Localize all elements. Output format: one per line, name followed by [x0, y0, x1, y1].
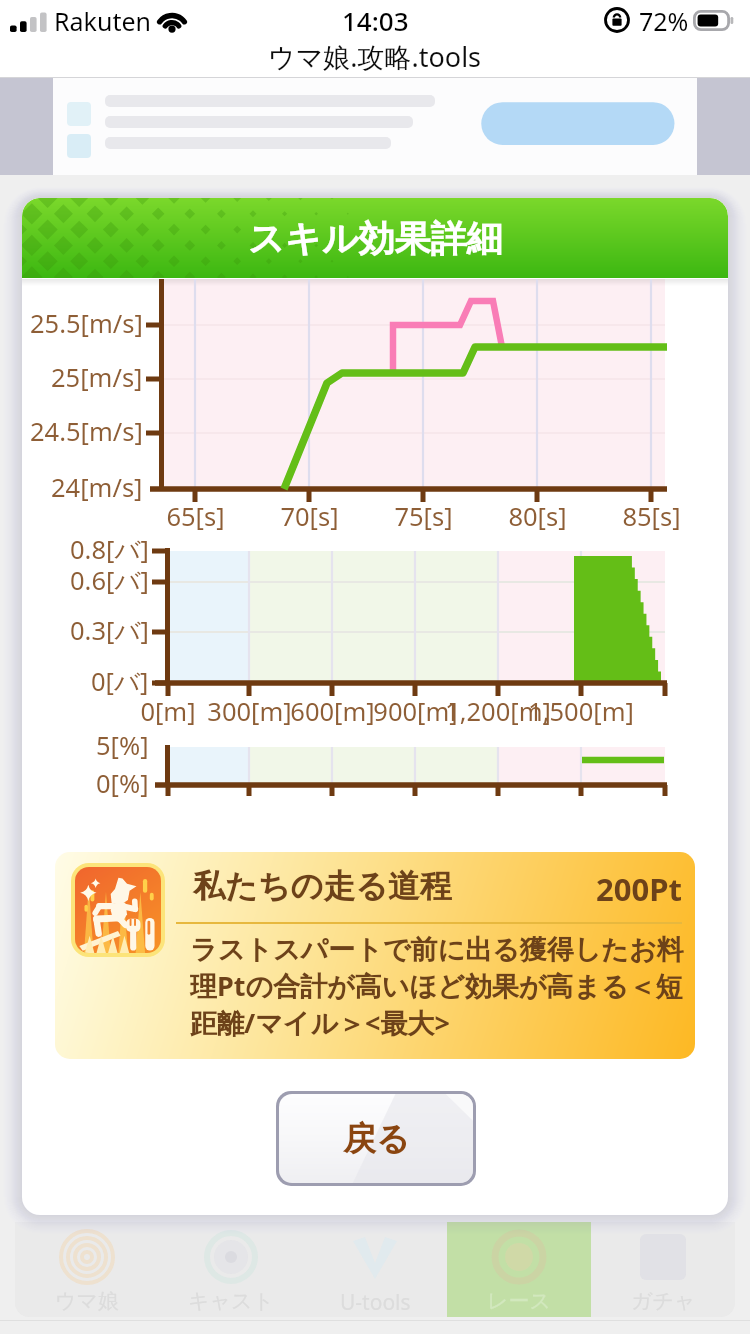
staticText: 0[バ] [91, 664, 149, 699]
button[interactable]: 戻る [279, 1094, 473, 1183]
staticText: 200Pt [596, 868, 682, 910]
staticText: 1,200[m] [445, 694, 551, 729]
button[interactable]: U-tools [303, 1222, 447, 1317]
staticText: 14:03 [342, 3, 409, 38]
staticText: キャスト [188, 1288, 274, 1314]
staticText: 70[s] [280, 499, 339, 534]
staticText: 0.3[バ] [70, 613, 149, 648]
staticText: 600[m] [290, 694, 375, 729]
staticText: 0[m] [140, 694, 196, 729]
staticText: 900[m] [373, 694, 458, 729]
button[interactable]: ガチャ [591, 1222, 735, 1317]
button[interactable]: レース [447, 1222, 591, 1317]
staticText: 0.6[バ] [70, 563, 149, 598]
staticText: 80[s] [508, 499, 567, 534]
staticText: 72% [639, 4, 689, 38]
staticText: 0[%] [96, 766, 149, 801]
staticText: スキル効果詳細 [248, 216, 503, 261]
staticText: 75[s] [394, 499, 453, 534]
staticText: ガチャ [631, 1288, 696, 1314]
staticText: ウマ娘.攻略.tools [268, 38, 482, 75]
staticText: 24[m/s] [51, 470, 143, 505]
staticText: 1,500[m] [528, 694, 634, 729]
staticText: 24.5[m/s] [30, 414, 143, 449]
staticText: U-tools [340, 1288, 411, 1317]
staticText: 私たちの走る道程 [193, 866, 452, 906]
staticText: 5[%] [96, 728, 149, 763]
staticText: 0.8[バ] [70, 532, 149, 567]
staticText: 戻る [343, 1118, 410, 1160]
staticText: 300[m] [207, 694, 292, 729]
staticText: 25.5[m/s] [30, 306, 143, 341]
staticText: レース [487, 1288, 551, 1314]
staticText: ラストスパートで前に出る獲得したお料 理Ptの合計が高いほど効果が高まる＜短 距… [190, 933, 684, 1041]
button[interactable]: 私たちの走る道程 [55, 852, 695, 1059]
staticText: 25[m/s] [51, 360, 143, 395]
staticText: 85[s] [622, 499, 681, 534]
button[interactable]: キャスト [159, 1222, 303, 1317]
staticText: Rakuten [54, 4, 151, 38]
staticText: ウマ娘 [55, 1288, 119, 1314]
button[interactable]: ウマ娘 [15, 1222, 159, 1317]
staticText: 65[s] [166, 499, 225, 534]
